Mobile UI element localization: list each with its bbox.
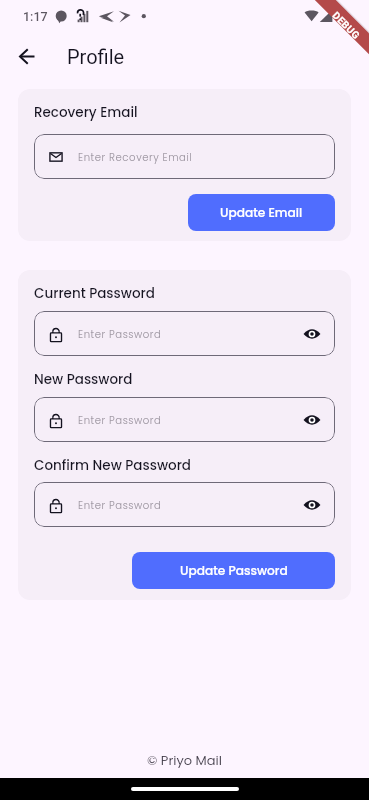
staticText: New Password [34, 370, 133, 389]
button[interactable]: Enter Recovery Email [34, 134, 335, 179]
button[interactable]: Enter Password [34, 482, 335, 527]
staticText: DEBUG [330, 10, 362, 42]
staticText: Enter Recovery Email [78, 150, 193, 164]
button[interactable]: Enter Password [34, 311, 335, 356]
button[interactable]: Update Email [188, 194, 335, 231]
button[interactable]: Update Password [132, 552, 335, 589]
staticText: Profile [67, 45, 125, 68]
staticText: Update Email [220, 204, 303, 221]
button[interactable]: Show password [294, 402, 330, 438]
button[interactable]: Show password [294, 316, 330, 352]
staticText: Current Password [34, 284, 155, 303]
button[interactable]: Show password [294, 487, 330, 523]
staticText: Update Password [180, 562, 288, 579]
staticText: 1:17 [23, 9, 48, 24]
staticText: Enter Password [78, 498, 162, 512]
staticText: Enter Password [78, 413, 162, 427]
staticText: © Priyo Mail [147, 751, 222, 769]
staticText: Enter Password [78, 327, 162, 341]
staticText: Confirm New Password [34, 456, 191, 475]
staticText: Recovery Email [34, 103, 138, 122]
button[interactable]: Enter Password [34, 397, 335, 442]
button[interactable]: Back [9, 38, 45, 74]
